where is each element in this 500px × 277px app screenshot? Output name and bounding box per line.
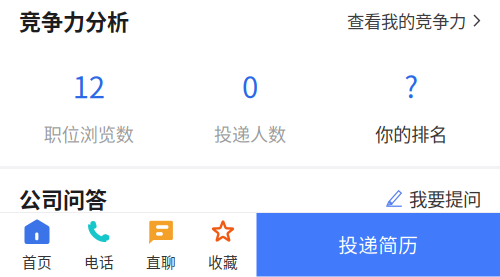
button[interactable]: 直聊 xyxy=(130,212,192,276)
staticText: 公司问答 xyxy=(19,182,107,214)
button[interactable]: 电话 xyxy=(68,212,130,276)
staticText: ? xyxy=(404,64,418,107)
staticText: 收藏 xyxy=(208,251,238,272)
staticText: 职位浏览数 xyxy=(44,120,134,147)
staticText: 我要提问 xyxy=(409,185,481,212)
button[interactable]: 收藏 xyxy=(192,212,254,276)
staticText: 你的排名 xyxy=(375,120,447,147)
staticText: 投递人数 xyxy=(214,120,286,147)
staticText: 首页 xyxy=(22,251,52,272)
staticText: 直聊 xyxy=(146,251,176,272)
staticText: 0 xyxy=(242,64,258,107)
button[interactable]: 首页 xyxy=(6,212,68,276)
staticText: 电话 xyxy=(84,251,114,272)
button[interactable]: 投递简历 xyxy=(256,212,500,276)
staticText: 查看我的竞争力 xyxy=(347,8,466,33)
staticText: 12 xyxy=(73,64,105,107)
staticText: 竞争力分析 xyxy=(19,5,129,36)
button[interactable]: 我要提问 xyxy=(385,181,481,216)
button[interactable]: 查看我的竞争力 xyxy=(347,2,481,39)
staticText: 投递简历 xyxy=(338,230,418,258)
